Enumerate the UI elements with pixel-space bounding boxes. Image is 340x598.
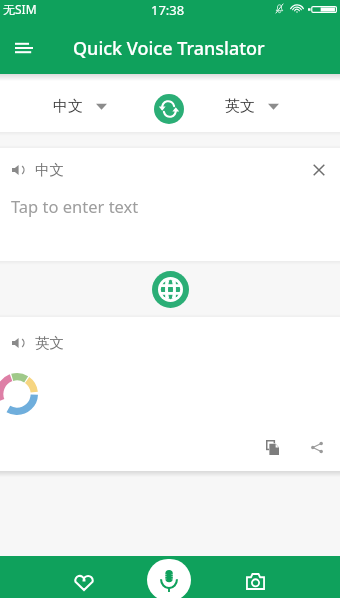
button[interactable]: Clear (298, 148, 340, 192)
staticText: 英文 (225, 97, 255, 116)
button[interactable]: 中文 (53, 94, 107, 118)
button[interactable]: Copy (254, 429, 290, 465)
button[interactable]: Record voice (147, 559, 191, 598)
button[interactable]: Speak source (0, 148, 35, 192)
button[interactable]: Swap languages (154, 94, 184, 124)
staticText: 中文 (35, 161, 64, 179)
staticText: 中文 (53, 97, 83, 116)
staticText: 无SIM (3, 1, 37, 17)
staticText: Quick Voice Translator (73, 36, 265, 61)
button[interactable]: Camera (234, 556, 277, 598)
button[interactable]: 英文 (225, 94, 279, 118)
button[interactable]: Share (299, 429, 335, 465)
button[interactable]: Favorites (62, 556, 105, 598)
staticText: Tap to enter text (11, 195, 139, 217)
button[interactable]: Menu (0, 22, 48, 74)
staticText: 英文 (35, 334, 64, 352)
button[interactable]: Speak result (0, 321, 35, 365)
staticText: 17:38 (151, 1, 185, 19)
button[interactable]: Translate (152, 271, 189, 308)
